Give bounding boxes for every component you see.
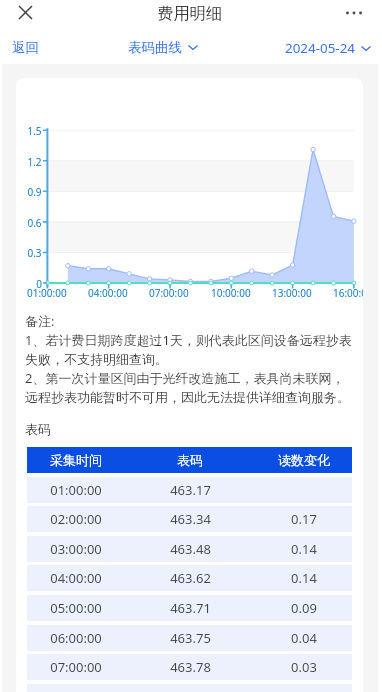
staticText: 463.34 [170, 510, 211, 528]
staticText: 13:00:00 [272, 286, 312, 300]
staticText: 1、若计费日期跨度超过1天，则代表此区间设备远程抄表 [25, 331, 352, 349]
staticText: 06:00:00 [50, 629, 102, 647]
staticText: 表码曲线 [128, 39, 182, 56]
staticText: 05:00:00 [50, 599, 102, 617]
staticText: 16:00:00 [333, 286, 363, 300]
staticText: 02:00:00 [50, 510, 102, 528]
button[interactable]: 05:00:00 [27, 595, 352, 621]
staticText: 0.14 [291, 569, 317, 587]
button[interactable]: 06:00:00 [27, 625, 352, 651]
staticText: 表码 [177, 452, 203, 468]
button[interactable]: 返回 [12, 39, 39, 56]
staticText: 0.6 [27, 216, 42, 230]
button[interactable]: 采集时间 [27, 447, 352, 473]
staticText: 2024-05-24 [285, 39, 355, 57]
button[interactable]: 03:00:00 [27, 536, 352, 562]
staticText: 1.2 [27, 155, 42, 169]
staticText: 0.04 [291, 629, 317, 647]
staticText: 0.14 [291, 540, 317, 558]
button[interactable]: Close [13, 0, 37, 24]
staticText: 费用明细 [157, 3, 222, 23]
staticText: 0.09 [291, 599, 317, 617]
button[interactable]: 07:00:00 [27, 654, 352, 680]
staticText: 07:00:00 [50, 658, 102, 676]
staticText: 01:00:00 [50, 481, 102, 499]
button[interactable]: 04:00:00 [27, 565, 352, 591]
staticText: 0 [36, 277, 42, 291]
button[interactable]: 01:00:00 [27, 477, 352, 503]
staticText: 失败，不支持明细查询。 [25, 351, 168, 367]
staticText: 04:00:00 [88, 286, 128, 300]
staticText: 463.17 [170, 481, 211, 499]
button[interactable]: 表码曲线 [128, 39, 198, 56]
staticText: 07:00:00 [149, 286, 189, 300]
staticText: 远程抄表功能暂时不可用，因此无法提供详细查询服务。 [25, 389, 350, 405]
staticText: 0.03 [291, 658, 317, 676]
staticText: 2、第一次计量区间由于光纤改造施工，表具尚未联网， [25, 369, 345, 387]
staticText: 463.78 [170, 658, 211, 676]
staticText: 463.75 [170, 629, 211, 647]
staticText: 463.48 [170, 540, 211, 558]
staticText: 备注: [25, 312, 55, 330]
staticText: 表码 [25, 421, 51, 437]
staticText: 10:00:00 [211, 286, 251, 300]
staticText: 返回 [12, 39, 39, 56]
staticText: 463.71 [170, 599, 211, 617]
staticText: 0.17 [291, 510, 317, 528]
staticText: 采集时间 [50, 452, 102, 468]
staticText: 463.62 [170, 569, 211, 587]
staticText: 04:00:00 [50, 569, 102, 587]
staticText: 0.9 [27, 185, 42, 199]
staticText: 1.5 [27, 124, 42, 138]
button[interactable]: More options [342, 1, 366, 25]
staticText: 0.3 [27, 246, 42, 260]
staticText: 03:00:00 [50, 540, 102, 558]
button[interactable]: 02:00:00 [27, 506, 352, 532]
button[interactable]: 2024-05-24 [285, 39, 371, 57]
staticText: 01:00:00 [27, 286, 67, 300]
staticText: 读数变化 [278, 452, 330, 468]
